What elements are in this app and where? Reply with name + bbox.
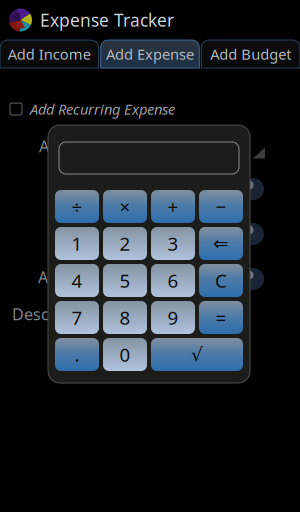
button[interactable]: Three (151, 227, 195, 260)
staticText: ÷ (71, 194, 82, 219)
button[interactable]: One (55, 227, 99, 260)
button[interactable]: Six (151, 264, 195, 297)
button[interactable]: Clear (199, 264, 243, 297)
button[interactable]: Zero (103, 338, 147, 371)
button[interactable]: Plus (151, 190, 195, 223)
button[interactable]: Add Budget (201, 40, 300, 68)
button[interactable]: Two (103, 227, 147, 260)
staticText: C (215, 268, 227, 293)
staticText: Add Expense (106, 44, 194, 64)
button[interactable]: Nine (151, 301, 195, 334)
button[interactable]: Divide (55, 190, 99, 223)
button[interactable]: Add Income (0, 40, 99, 68)
staticText: 7 (71, 305, 82, 330)
staticText: − (215, 194, 226, 219)
button[interactable]: Square root (151, 338, 243, 371)
staticText: Description (12, 303, 100, 325)
button[interactable]: Minus (199, 190, 243, 223)
button[interactable]: Add Expense (101, 40, 199, 68)
staticText: 0 (119, 342, 130, 367)
button[interactable]: Choose (242, 223, 264, 245)
staticText: Account (38, 266, 100, 288)
button[interactable]: Choose (242, 178, 264, 200)
button[interactable]: Equals (199, 301, 243, 334)
staticText: + (167, 194, 178, 219)
staticText: = (215, 305, 226, 330)
button[interactable]: Backspace (199, 227, 243, 260)
staticText: 2 (119, 231, 130, 256)
staticText: √ (191, 344, 203, 365)
staticText: Expense Tracker (40, 8, 174, 31)
staticText: Amount (39, 135, 100, 157)
button[interactable]: Choose (242, 268, 264, 290)
staticText: 5 (119, 268, 130, 293)
staticText: 8 (119, 305, 130, 330)
staticText: 9 (167, 305, 178, 330)
button[interactable]: Eight (103, 301, 147, 334)
staticText: 3 (167, 231, 178, 256)
staticText: 1 (71, 231, 82, 256)
button[interactable]: Five (103, 264, 147, 297)
button[interactable]: Multiply (103, 190, 147, 223)
staticText: 6 (167, 268, 178, 293)
staticText: ⇐ (213, 233, 229, 254)
staticText: Add Budget (210, 44, 291, 64)
button[interactable]: Add Recurring Expense (0, 94, 300, 124)
staticText: × (119, 194, 130, 219)
button[interactable]: Four (55, 264, 99, 297)
button[interactable]: Seven (55, 301, 99, 334)
staticText: 4 (71, 268, 82, 293)
staticText: . (74, 342, 79, 367)
staticText: Add Income (8, 44, 91, 64)
staticText: Add Recurring Expense (30, 99, 175, 119)
button[interactable]: Decimal point (55, 338, 99, 371)
